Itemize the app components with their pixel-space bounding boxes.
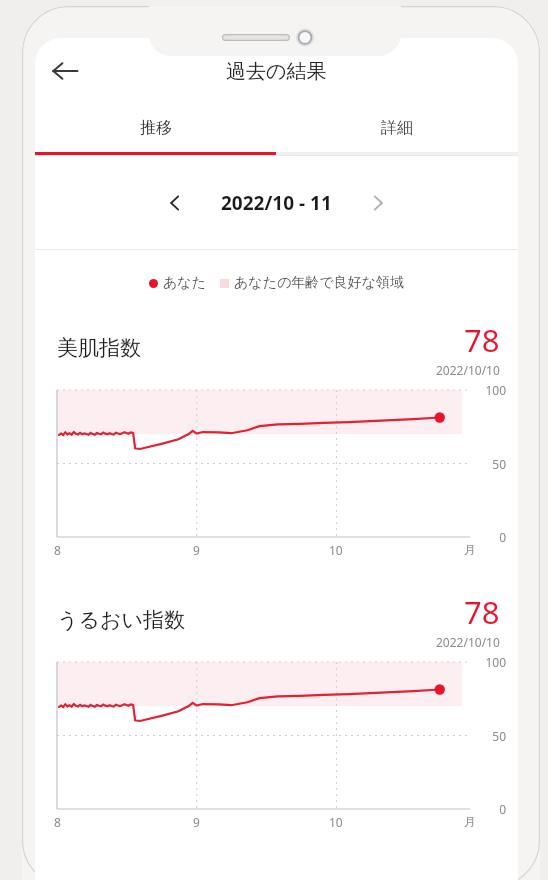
staticText: 10: [329, 814, 343, 830]
staticText: 過去の結果: [226, 59, 327, 84]
staticText: 78: [464, 319, 500, 361]
staticText: 50: [466, 728, 506, 744]
staticText: 2022/10/10: [436, 634, 500, 650]
staticText: 0: [466, 801, 506, 817]
button[interactable]: 詳細: [276, 104, 518, 152]
staticText: 美肌指数: [57, 335, 141, 361]
staticText: 100: [466, 654, 506, 670]
staticText: 78: [464, 591, 500, 633]
staticText: 月: [464, 542, 476, 557]
button[interactable]: Next period: [356, 181, 400, 225]
button[interactable]: Back: [39, 45, 91, 97]
staticText: 100: [466, 382, 506, 398]
staticText: 2022/10 - 11: [221, 190, 332, 216]
staticText: 9: [193, 814, 200, 830]
staticText: あなたの年齢で良好な領域: [234, 274, 404, 292]
staticText: 9: [193, 542, 200, 558]
staticText: 8: [54, 814, 61, 830]
staticText: 0: [466, 529, 506, 545]
staticText: うるおい指数: [57, 607, 185, 633]
staticText: 推移: [140, 118, 172, 138]
staticText: 8: [54, 542, 61, 558]
staticText: 詳細: [381, 118, 413, 138]
button[interactable]: Previous period: [153, 181, 197, 225]
staticText: 50: [466, 456, 506, 472]
button[interactable]: 推移: [35, 104, 276, 152]
staticText: あなた: [163, 274, 206, 292]
staticText: 2022/10/10: [436, 362, 500, 378]
staticText: 月: [464, 814, 476, 829]
staticText: 10: [329, 542, 343, 558]
